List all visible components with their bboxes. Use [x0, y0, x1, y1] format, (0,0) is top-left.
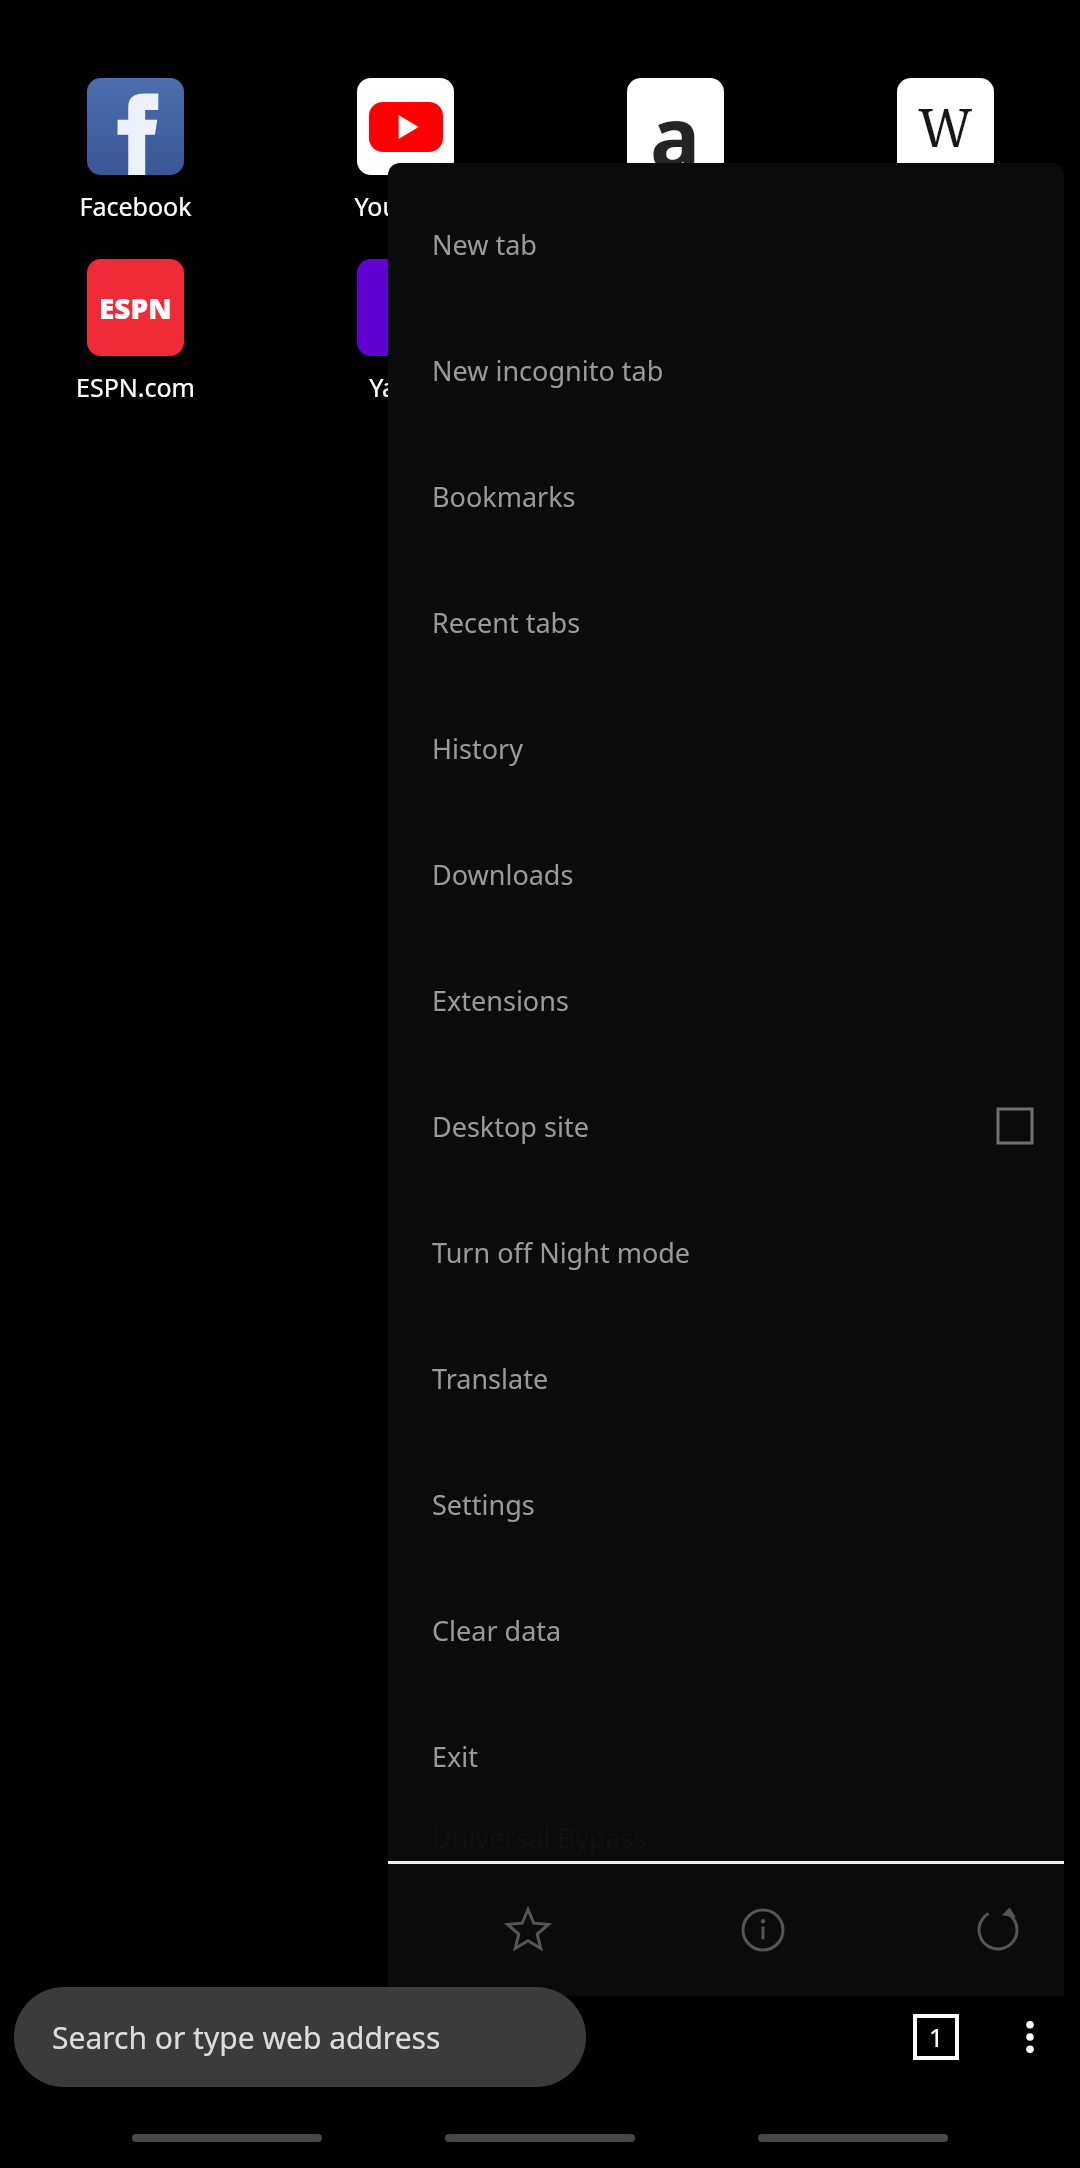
button[interactable]: Search or type web address [14, 1987, 586, 2087]
staticText: Exit [432, 1738, 479, 1775]
staticText: Turn off Night mode [432, 1234, 691, 1271]
button[interactable]: Page info [727, 1894, 799, 1966]
button[interactable]: Exit [388, 1693, 1064, 1819]
button[interactable]: Tabs, 1 open [898, 1999, 974, 2075]
button[interactable]: History [388, 685, 1064, 811]
staticText: Yahoo [369, 370, 442, 404]
button[interactable]: W [810, 78, 1080, 223]
button[interactable]: Recent tabs [388, 559, 1064, 685]
button[interactable]: Turn off Night mode [388, 1189, 1064, 1315]
button[interactable]: Bookmarks [388, 433, 1064, 559]
button[interactable]: Reload [962, 1894, 1034, 1966]
button[interactable]: Bookmark [492, 1894, 564, 1966]
button[interactable]: YouTube [270, 78, 540, 223]
staticText: Extensions [432, 982, 569, 1019]
button[interactable]: Facebook [0, 78, 270, 223]
button[interactable]: ESPN [0, 259, 270, 404]
staticText: History [432, 730, 523, 767]
button[interactable]: Extensions [388, 937, 1064, 1063]
button[interactable]: More options [992, 1999, 1068, 2075]
button[interactable]: New incognito tab [388, 307, 1064, 433]
staticText: ESPN.com [76, 370, 195, 404]
button[interactable]: Settings [388, 1441, 1064, 1567]
staticText: Translate [432, 1360, 549, 1397]
staticText: Bookmarks [432, 478, 576, 515]
staticText: Settings [432, 1486, 535, 1523]
staticText: New tab [432, 226, 537, 263]
staticText: Clear data [432, 1612, 562, 1649]
button[interactable]: New tab [388, 181, 1064, 307]
staticText: Facebook [79, 189, 192, 223]
staticText: YouTube [354, 189, 456, 223]
staticText: a [650, 78, 701, 175]
staticText: Search or type web address [52, 2017, 441, 2058]
button[interactable]: Translate [388, 1315, 1064, 1441]
button[interactable]: a [540, 78, 810, 223]
staticText: ESPN [99, 289, 172, 327]
staticText: New incognito tab [432, 352, 664, 389]
staticText: Recent tabs [432, 604, 581, 641]
button[interactable]: Desktop site [388, 1063, 1064, 1189]
button[interactable]: Downloads [388, 811, 1064, 937]
staticText: W [918, 91, 973, 162]
button[interactable]: Y! [270, 259, 540, 404]
staticText: Downloads [432, 856, 574, 893]
staticText: Desktop site [432, 1108, 589, 1145]
staticText: 1 [929, 2020, 944, 2054]
button[interactable]: Clear data [388, 1567, 1064, 1693]
